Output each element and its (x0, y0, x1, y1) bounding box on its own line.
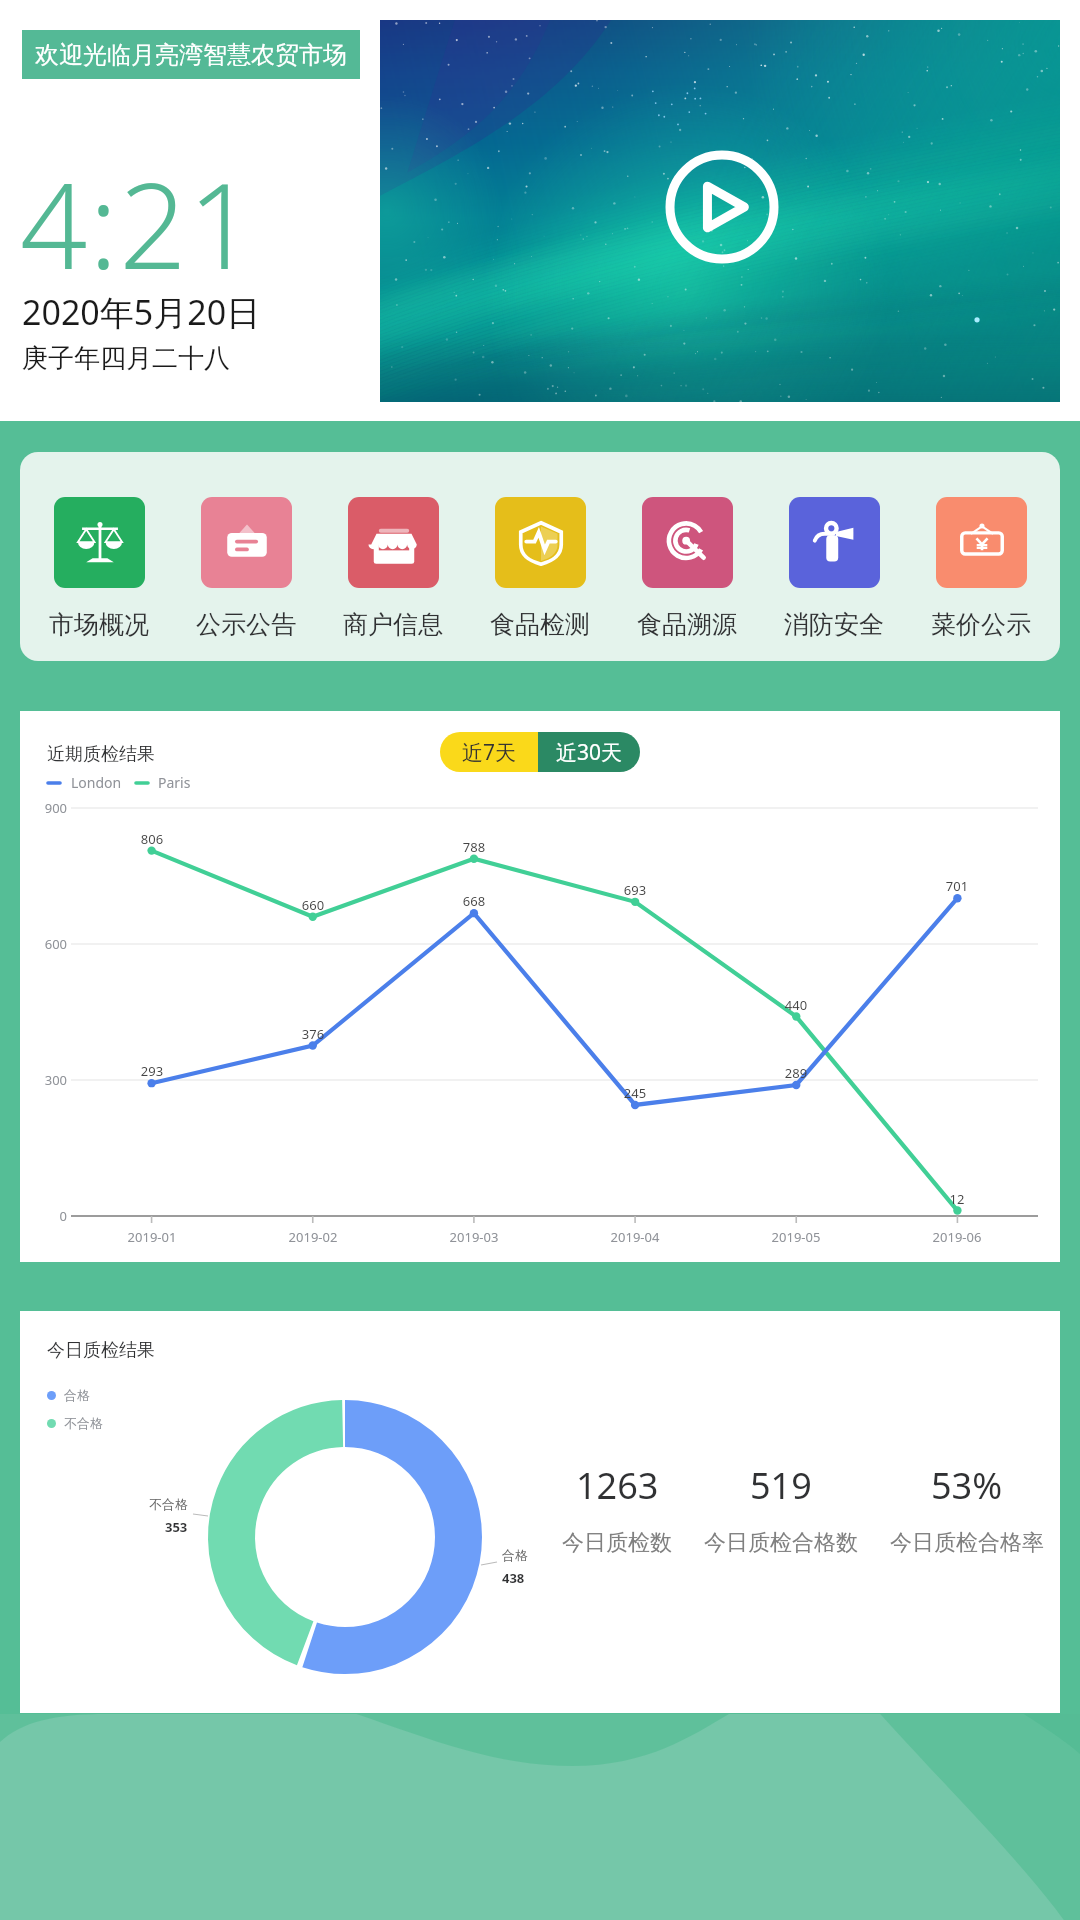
staticText: 600 (20, 935, 67, 953)
button[interactable]: 菜价公示 (914, 452, 1048, 640)
staticText: 消防安全 (784, 609, 884, 640)
staticText: 不合格 (64, 1415, 103, 1431)
button[interactable]: Play video (665, 150, 779, 264)
staticText: 353 (165, 1518, 188, 1536)
button[interactable]: Play video (380, 20, 1060, 402)
button[interactable]: 1263 (507, 1461, 727, 1557)
staticText: 今日质检结果 (47, 1339, 155, 1362)
staticText: 701 (907, 877, 1007, 895)
staticText: 今日质检合格数 (704, 1529, 858, 1557)
staticText: 食品检测 (490, 609, 590, 640)
staticText: 440 (746, 996, 846, 1014)
staticText: 近期质检结果 (47, 743, 155, 766)
staticText: 668 (424, 892, 524, 910)
staticText: 53% (931, 1461, 1003, 1510)
staticText: 660 (263, 896, 363, 914)
staticText: 289 (746, 1064, 846, 1082)
staticText: 519 (750, 1461, 812, 1510)
staticText: Paris (158, 773, 191, 792)
staticText: 2019-03 (424, 1228, 524, 1246)
staticText: 商户信息 (343, 609, 443, 640)
button[interactable]: 公示公告 (179, 452, 313, 640)
staticText: 市场概况 (49, 609, 149, 640)
staticText: 不合格 (149, 1496, 188, 1512)
staticText: 欢迎光临月亮湾智慧农贸市场 (35, 40, 347, 70)
staticText: 900 (20, 799, 67, 817)
staticText: 300 (20, 1071, 67, 1089)
staticText: 合格 (502, 1547, 528, 1563)
staticText: 2020年5月20日 (22, 289, 261, 335)
button[interactable]: 消防安全 (767, 452, 901, 640)
staticText: 0 (20, 1207, 67, 1225)
staticText: 4:21 (20, 143, 257, 304)
button[interactable]: 食品溯源 (620, 452, 754, 640)
staticText: 12 (907, 1190, 1007, 1208)
button[interactable]: 近30天 (538, 732, 640, 772)
staticText: 245 (585, 1084, 685, 1102)
button[interactable]: 商户信息 (326, 452, 460, 640)
staticText: 1263 (576, 1461, 659, 1510)
staticText: 788 (424, 838, 524, 856)
staticText: 376 (263, 1025, 363, 1043)
staticText: 806 (102, 830, 202, 848)
staticText: 近30天 (556, 738, 623, 767)
staticText: 2019-01 (102, 1228, 202, 1246)
button[interactable]: 53% (857, 1461, 1077, 1557)
staticText: 2019-06 (907, 1228, 1007, 1246)
staticText: 438 (502, 1569, 525, 1587)
staticText: 293 (102, 1062, 202, 1080)
staticText: 今日质检合格率 (890, 1529, 1044, 1557)
button[interactable]: 市场概况 (32, 452, 166, 640)
staticText: 2019-02 (263, 1228, 363, 1246)
staticText: 近7天 (462, 738, 517, 767)
staticText: 2019-05 (746, 1228, 846, 1246)
staticText: 2019-04 (585, 1228, 685, 1246)
button[interactable]: 近7天 (440, 732, 538, 772)
staticText: 菜价公示 (931, 609, 1031, 640)
staticText: 合格 (64, 1387, 90, 1403)
staticText: 庚子年四月二十八 (22, 342, 230, 375)
staticText: London (71, 773, 122, 792)
staticText: 693 (585, 881, 685, 899)
staticText: 公示公告 (196, 609, 296, 640)
staticText: 食品溯源 (637, 609, 737, 640)
button[interactable]: 食品检测 (473, 452, 607, 640)
button[interactable]: 519 (671, 1461, 891, 1557)
staticText: 今日质检数 (562, 1529, 672, 1557)
button[interactable]: 欢迎光临月亮湾智慧农贸市场 (22, 30, 360, 79)
